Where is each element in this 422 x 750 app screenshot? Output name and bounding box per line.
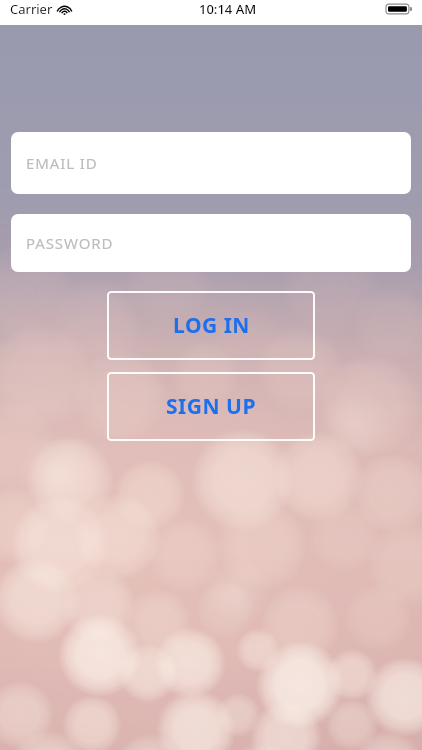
button[interactable]: LOG IN [107,291,315,360]
staticText: EMAIL ID [26,153,98,173]
staticText: PASSWORD [26,233,114,253]
button[interactable]: SIGN UP [107,372,315,441]
staticText: 10:14 AM [199,0,257,18]
button[interactable]: PASSWORD [11,214,411,272]
button[interactable]: EMAIL ID [11,132,411,194]
staticText: SIGN UP [166,392,256,421]
staticText: LOG IN [173,311,250,340]
staticText: Carrier [10,0,53,18]
